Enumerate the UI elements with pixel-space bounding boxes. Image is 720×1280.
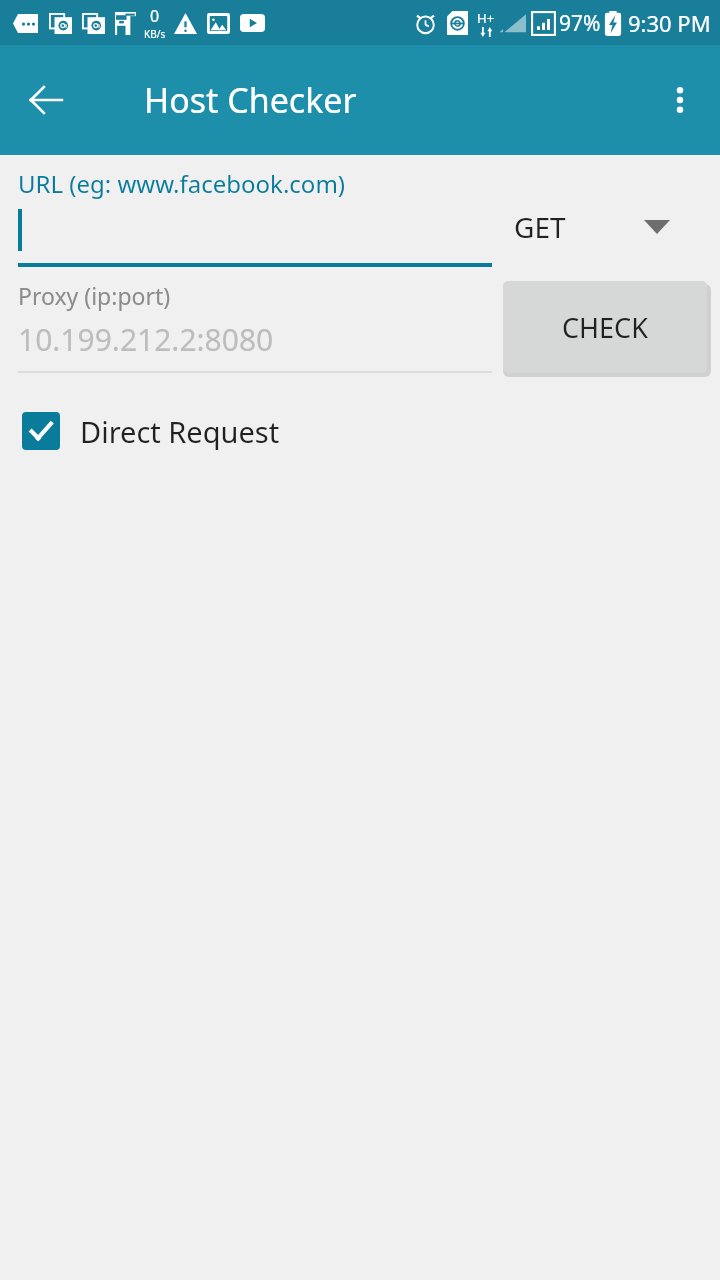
button[interactable]: GET [500,195,700,259]
staticText: URL (eg: www.facebook.com) [18,167,346,200]
button[interactable]: CHECK [503,281,707,373]
staticText: 10.199.212.2:8080 [18,319,274,360]
staticText: Host Checker [144,77,357,123]
button[interactable]: Direct Request [22,401,280,461]
staticText: Direct Request [80,412,280,451]
button[interactable]: More options [650,70,710,130]
button[interactable] [18,201,492,267]
staticText: 9:30 PM [628,8,711,38]
staticText: CHECK [562,309,648,346]
staticText: KB/s [144,27,166,41]
staticText: GET [514,208,566,246]
button[interactable]: 10.199.212.2:8080 [18,313,492,373]
staticText: H+ [477,9,495,27]
staticText: Proxy (ip:port) [18,280,171,311]
button[interactable]: Navigate up [14,68,78,132]
staticText: 0 [150,5,160,27]
staticText: 97% [559,9,601,38]
